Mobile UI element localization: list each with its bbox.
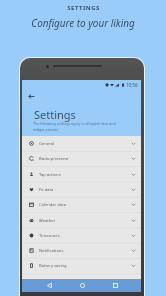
staticText: 10:56 bbox=[126, 82, 138, 88]
button[interactable]: Backup/restore bbox=[22, 151, 141, 166]
button[interactable]: Recents bbox=[109, 279, 122, 292]
button[interactable]: General bbox=[22, 136, 141, 151]
staticText: Configure to your liking bbox=[31, 16, 135, 29]
staticText: Battery saving bbox=[39, 263, 67, 269]
staticText: Backup/restore bbox=[39, 156, 69, 162]
button[interactable]: Fit data bbox=[22, 182, 141, 197]
button[interactable]: Notifications bbox=[22, 243, 141, 258]
staticText: Settings bbox=[34, 107, 76, 122]
button[interactable]: Tap actions bbox=[22, 167, 141, 182]
staticText: Weather bbox=[39, 218, 56, 224]
button[interactable]: Battery saving bbox=[22, 258, 141, 273]
staticText: Tap actions bbox=[39, 172, 61, 178]
staticText: The following settings apply to all watc… bbox=[33, 121, 116, 133]
staticText: Notifications bbox=[39, 248, 64, 254]
button[interactable]: Weather bbox=[22, 213, 141, 228]
button[interactable]: Home bbox=[76, 279, 89, 292]
button[interactable]: Back bbox=[43, 279, 56, 292]
staticText: Fit data bbox=[39, 187, 54, 193]
button[interactable]: Timezones bbox=[22, 228, 141, 243]
button[interactable]: Calendar data bbox=[22, 197, 141, 212]
staticText: Timezones bbox=[39, 233, 60, 239]
staticText: SETTINGS bbox=[67, 4, 100, 12]
button[interactable]: Back bbox=[25, 90, 37, 102]
staticText: General bbox=[39, 141, 55, 147]
staticText: Calendar data bbox=[39, 202, 66, 208]
